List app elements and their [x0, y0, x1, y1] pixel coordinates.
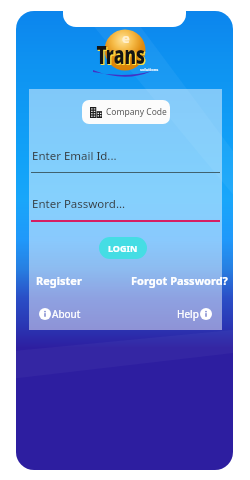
button[interactable]: Register: [36, 273, 82, 288]
staticText: Company Code: [106, 106, 167, 118]
staticText: Trans: [96, 38, 145, 71]
staticText: About: [52, 307, 81, 321]
button[interactable]: LOGIN: [99, 237, 147, 259]
staticText: LOGIN: [108, 242, 138, 254]
staticText: e: [122, 29, 130, 47]
other: About: [39, 308, 51, 320]
button[interactable]: Help: [177, 307, 212, 321]
staticText: solutions: [140, 67, 159, 72]
staticText: Enter Email Id...: [32, 148, 117, 164]
button[interactable]: About: [39, 307, 81, 321]
button[interactable]: Company Code: [82, 100, 170, 124]
button[interactable]: Forgot Password?: [131, 273, 228, 288]
other: Help: [200, 308, 212, 320]
staticText: Enter Password...: [32, 196, 126, 212]
staticText: Help: [177, 307, 199, 321]
staticText: Trans: [97, 39, 146, 72]
